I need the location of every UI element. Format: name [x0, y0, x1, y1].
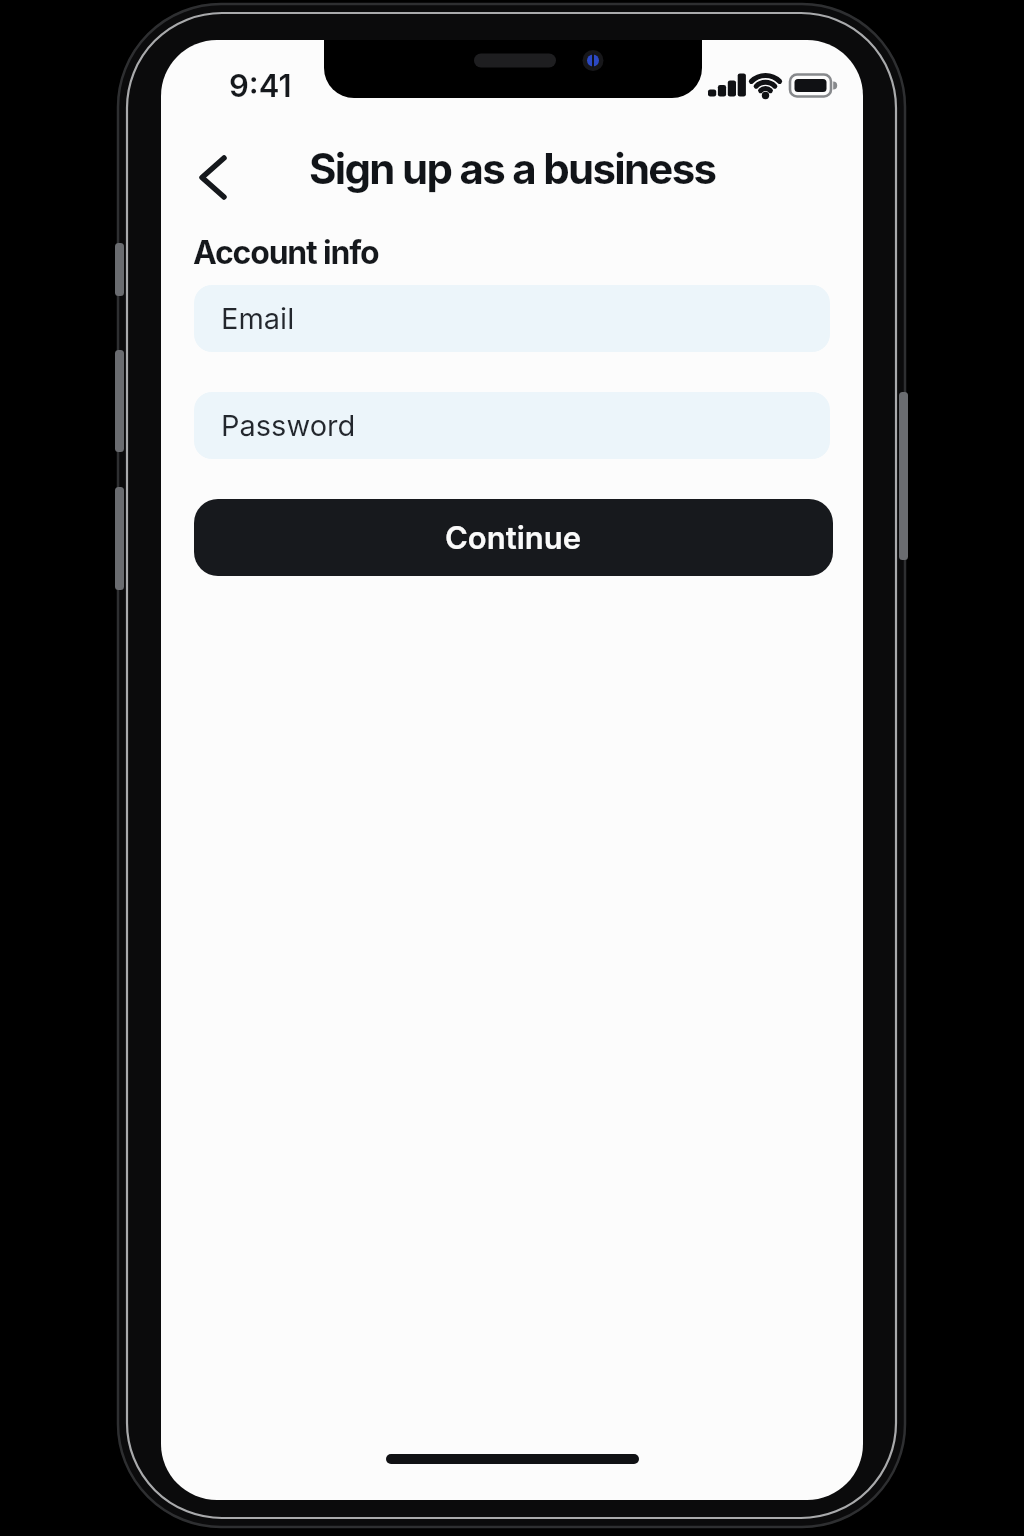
- staticText: Account info: [193, 233, 379, 272]
- button[interactable]: Password: [194, 392, 830, 459]
- staticText: Email: [221, 301, 295, 336]
- staticText: 9:41: [229, 67, 292, 105]
- staticText: Continue: [445, 519, 582, 557]
- staticText: Password: [221, 408, 356, 443]
- button[interactable]: Email: [194, 285, 830, 352]
- staticText: Sign up as a business: [309, 143, 716, 194]
- button[interactable]: [177, 136, 249, 220]
- button[interactable]: Continue: [194, 499, 833, 576]
